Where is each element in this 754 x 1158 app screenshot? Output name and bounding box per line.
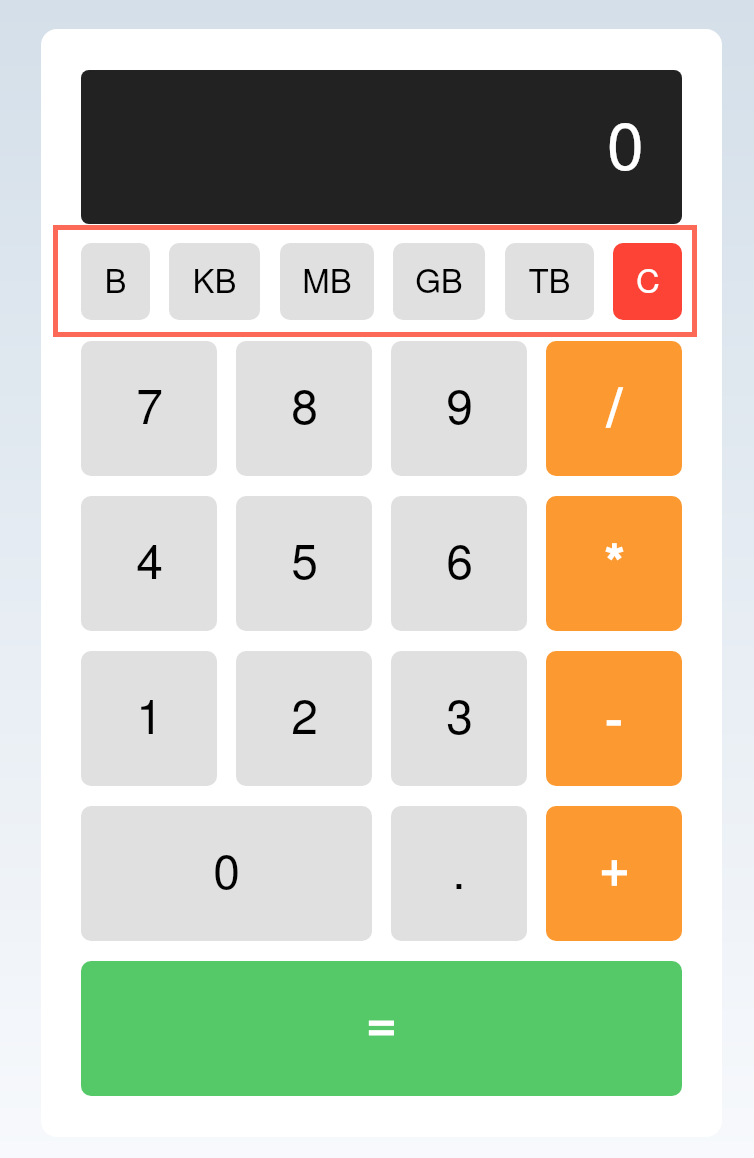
button[interactable]: Terabytes	[505, 243, 594, 320]
button[interactable]: Divide	[546, 341, 682, 476]
staticText: 9	[446, 369, 473, 438]
staticText: 0	[607, 94, 644, 189]
staticText: 4	[136, 524, 163, 593]
staticText: .	[452, 834, 466, 903]
button[interactable]: Gigabytes	[393, 243, 485, 320]
staticText: 2	[291, 679, 318, 748]
staticText: *	[604, 522, 625, 596]
button[interactable]: Clear	[613, 243, 682, 320]
button[interactable]: 8	[236, 341, 372, 476]
staticText: KB	[192, 255, 237, 302]
button[interactable]: 3	[391, 651, 527, 786]
button[interactable]: Add	[546, 806, 682, 941]
button[interactable]: Kilobytes	[169, 243, 260, 320]
button[interactable]: Bytes	[81, 243, 150, 320]
staticText: 7	[136, 369, 163, 438]
staticText: GB	[415, 255, 463, 302]
button[interactable]: 1	[81, 651, 217, 786]
staticText: +	[599, 826, 630, 900]
button[interactable]: 9	[391, 341, 527, 476]
button[interactable]: 6	[391, 496, 527, 631]
button[interactable]: Multiply	[546, 496, 682, 631]
button[interactable]: Subtract	[546, 651, 682, 786]
staticText: 8	[291, 369, 318, 438]
staticText: C	[636, 255, 660, 302]
staticText: =	[366, 981, 397, 1055]
staticText: 3	[446, 679, 473, 748]
staticText: 1	[136, 679, 163, 748]
staticText: /	[607, 366, 622, 440]
button[interactable]: 2	[236, 651, 372, 786]
button[interactable]: Decimal point	[391, 806, 527, 941]
staticText: 6	[446, 524, 473, 593]
button[interactable]: Equals	[81, 961, 682, 1096]
staticText: B	[104, 255, 127, 302]
button[interactable]: 0	[81, 806, 372, 941]
staticText: 5	[291, 524, 318, 593]
staticText: TB	[528, 255, 571, 302]
button[interactable]: 4	[81, 496, 217, 631]
button[interactable]: 5	[236, 496, 372, 631]
button[interactable]: 7	[81, 341, 217, 476]
button[interactable]: Megabytes	[280, 243, 374, 320]
staticText: -	[605, 677, 623, 751]
staticText: MB	[302, 255, 352, 302]
staticText: 0	[213, 834, 240, 903]
